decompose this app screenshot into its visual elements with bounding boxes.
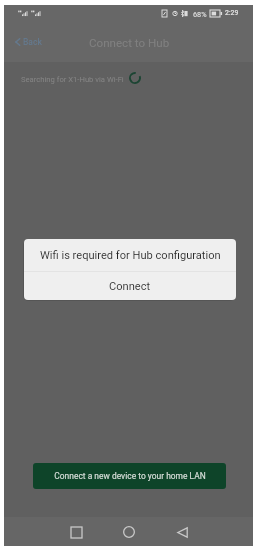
button[interactable]: Back — [8, 32, 49, 52]
button[interactable]: Back — [166, 516, 198, 548]
staticText: 2:29 — [225, 9, 239, 17]
staticText: Wifi is required for Hub configuration — [40, 249, 221, 262]
staticText: Connect to Hub — [89, 36, 170, 50]
staticText: Back — [23, 37, 42, 47]
button[interactable]: Home — [113, 516, 145, 548]
button[interactable]: Recent apps — [60, 516, 92, 548]
staticText: Searching for X1-Hub via Wi-Fi — [21, 75, 124, 84]
staticText: 68% — [193, 10, 207, 19]
button[interactable]: Connect — [24, 272, 236, 300]
staticText: Connect a new device to your home LAN — [54, 471, 206, 481]
button[interactable]: Connect a new device to your home LAN — [33, 463, 226, 489]
staticText: Connect — [109, 280, 151, 293]
